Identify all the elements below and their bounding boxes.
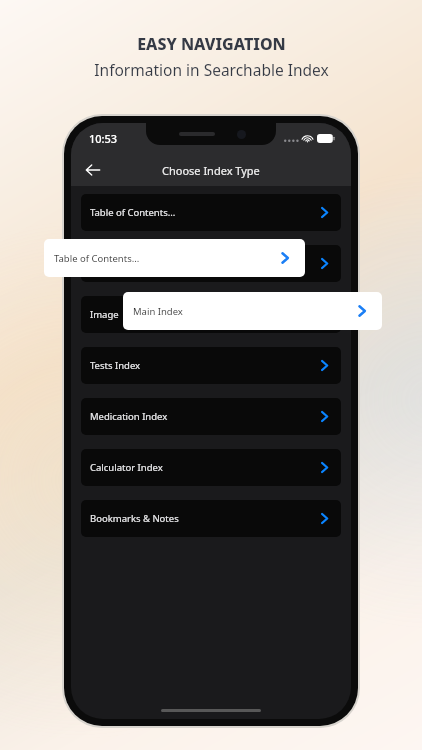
button[interactable]: Main Index xyxy=(123,292,382,330)
button[interactable] xyxy=(81,245,341,282)
staticText: Bookmarks & Notes xyxy=(90,512,179,525)
staticText: Choose Index Type xyxy=(162,163,260,178)
staticText: Main Index xyxy=(133,305,183,318)
staticText: EASY NAVIGATION xyxy=(137,33,286,55)
button[interactable]: Calculator Index xyxy=(81,449,341,486)
staticText: Table of Contents... xyxy=(54,252,140,265)
button[interactable]: Table of Contents... xyxy=(44,239,305,277)
staticText: Calculator Index xyxy=(90,461,163,474)
staticText: 10:53 xyxy=(89,131,118,146)
staticText: Table of Contents... xyxy=(90,206,176,219)
staticText: Medication Index xyxy=(90,410,168,423)
button[interactable]: Bookmarks & Notes xyxy=(81,500,341,537)
staticText: Image xyxy=(90,308,122,321)
button[interactable]: Back xyxy=(80,157,106,183)
button[interactable]: Image xyxy=(81,296,341,333)
button[interactable]: Tests Index xyxy=(81,347,341,384)
button[interactable]: Table of Contents... xyxy=(81,194,341,231)
staticText: Information in Searchable Index xyxy=(94,59,329,80)
staticText: Tests Index xyxy=(90,359,141,372)
button[interactable]: Medication Index xyxy=(81,398,341,435)
